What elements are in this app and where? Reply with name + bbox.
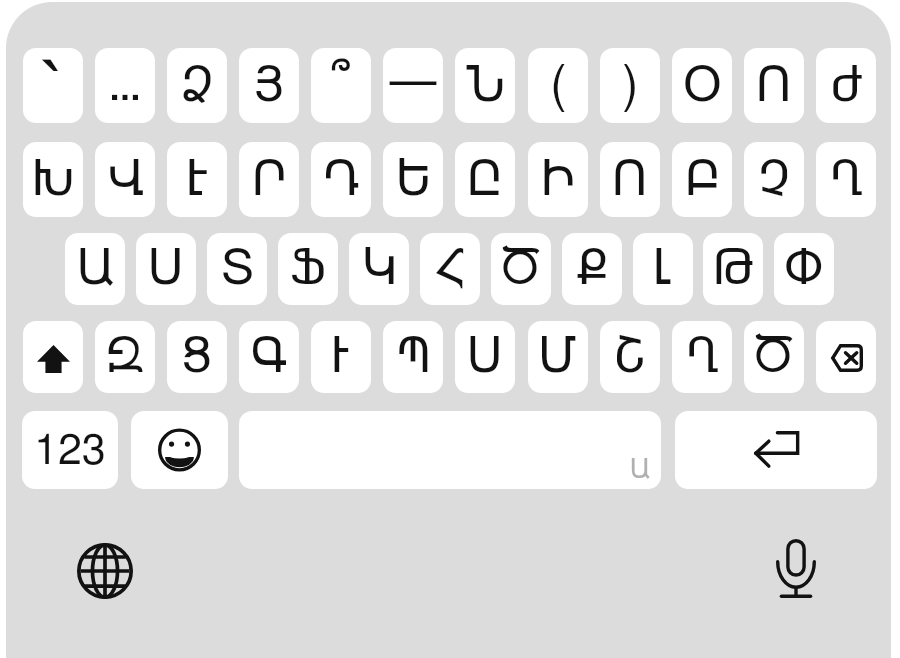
staticText: Ծ [501,244,541,294]
staticText: Ի [541,155,576,205]
staticText: Ւ [331,332,351,382]
staticText: Ց [181,332,213,382]
button[interactable]: … [95,48,155,123]
staticText: Թ [713,244,753,294]
staticText: Ծ [754,332,794,382]
button[interactable]: Փ [774,233,834,305]
button[interactable]: Է [167,142,227,217]
button[interactable]: Ի [528,142,588,217]
button[interactable]: Տ [207,233,267,305]
button[interactable]: Պ [383,321,443,393]
button[interactable]: Ծ [744,321,804,393]
staticText: Բ [685,155,720,205]
button[interactable]: Զ [95,321,155,393]
staticText: Ե [396,155,431,205]
button[interactable]: Ք [562,233,622,305]
button[interactable]: Ո [600,142,660,217]
button[interactable]: Ը [455,142,515,217]
button[interactable]: Ֆ [278,233,338,305]
staticText: Օ [683,61,722,111]
staticText: Ձ [181,61,214,111]
button[interactable]: Կ [349,233,409,305]
button[interactable]: Ա [65,233,125,305]
staticText: Հ [435,244,465,294]
button[interactable]: Գ [239,321,299,393]
button[interactable]: Դ [311,142,371,217]
button[interactable]: Յ [239,48,299,123]
button[interactable]: Ն [455,48,515,123]
button[interactable]: ՝ [23,48,83,123]
staticText: 123 [34,430,106,473]
button[interactable]: — [383,48,443,123]
staticText: ) [622,61,639,111]
button[interactable]: Օ [672,48,732,123]
staticText: ՝ [40,55,66,123]
button[interactable]: Բ [672,142,732,217]
button[interactable]: Ե [383,142,443,217]
button[interactable]: Emoji [131,411,228,489]
button[interactable]: Վ [95,142,155,217]
staticText: Խ [32,155,75,205]
button[interactable]: Ծ [491,233,551,305]
staticText: Ք [576,244,608,294]
button[interactable]: Shift [23,321,83,393]
staticText: Ֆ [290,244,326,294]
staticText: Ս [467,332,503,382]
button[interactable]: Ժ [816,48,876,123]
staticText: Ժ [830,61,863,111]
button[interactable]: Թ [703,233,763,305]
staticText: Է [186,155,209,205]
button[interactable]: Ո [744,48,804,123]
staticText: ՞ [331,57,352,119]
button[interactable]: ( [528,48,588,123]
button[interactable]: Ր [239,142,299,217]
staticText: — [388,57,438,107]
button[interactable]: ) [600,48,660,123]
staticText: Ս [148,244,184,294]
button[interactable]: Խ [23,142,83,217]
button[interactable]: Enter [675,411,877,489]
staticText: Յ [254,61,284,111]
button[interactable]: Space [239,411,661,489]
button[interactable]: Մ [528,321,588,393]
staticText: Ն [466,61,505,111]
button[interactable]: Հ [420,233,480,305]
staticText: Ր [252,155,287,205]
staticText: Ղ [830,155,863,205]
button[interactable]: Ս [455,321,515,393]
button[interactable]: Ղ [672,321,732,393]
staticText: Ո [612,155,648,205]
staticText: Ղ [686,332,719,382]
staticText: Զ [106,332,144,382]
staticText: Փ [784,244,824,294]
button[interactable]: Ւ [311,321,371,393]
staticText: Լ [653,244,673,294]
button[interactable]: ՞ [311,48,371,123]
staticText: Ը [467,155,503,205]
button[interactable]: Չ [744,142,804,217]
staticText: Շ [615,332,646,382]
staticText: … [108,60,142,110]
staticText: Կ [362,244,397,294]
button[interactable]: Ղ [816,142,876,217]
button[interactable]: Backspace [816,321,876,393]
staticText: Վ [107,155,144,205]
staticText: ( [550,61,567,111]
staticText: Ո [756,61,792,111]
button[interactable]: Շ [600,321,660,393]
button[interactable]: 123 [22,411,118,489]
staticText: Մ [539,332,577,382]
staticText: Ա [630,456,650,483]
button[interactable]: Voice input [751,524,840,613]
button[interactable]: Ձ [167,48,227,123]
staticText: Ա [77,244,114,294]
button[interactable]: Ց [167,321,227,393]
staticText: Դ [323,155,360,205]
staticText: Չ [758,155,791,205]
staticText: Տ [221,244,254,294]
staticText: Պ [396,332,431,382]
button[interactable]: Ս [136,233,196,305]
button[interactable]: Լ [633,233,693,305]
button[interactable]: Change keyboard language [60,526,149,615]
staticText: Գ [251,332,288,382]
